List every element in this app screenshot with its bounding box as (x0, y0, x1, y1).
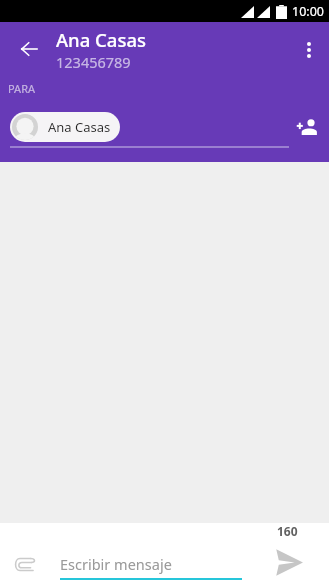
button[interactable]: Back (0, 22, 56, 78)
button[interactable]: Send (275, 548, 303, 576)
button[interactable]: Ana Casas (10, 112, 120, 142)
staticText: 123456789 (56, 52, 131, 72)
staticText: 160 (277, 523, 298, 539)
button[interactable]: Attach (5, 544, 45, 584)
staticText: PARA (8, 81, 36, 96)
staticText: Ana Casas (56, 27, 147, 52)
staticText: 10:00 (292, 3, 324, 20)
button[interactable]: More options (289, 22, 329, 78)
staticText: Escribir mensaje (60, 554, 172, 574)
staticText: Ana Casas (48, 118, 111, 136)
button[interactable]: Add person (290, 109, 326, 145)
button[interactable]: Escribir mensaje (60, 554, 242, 580)
